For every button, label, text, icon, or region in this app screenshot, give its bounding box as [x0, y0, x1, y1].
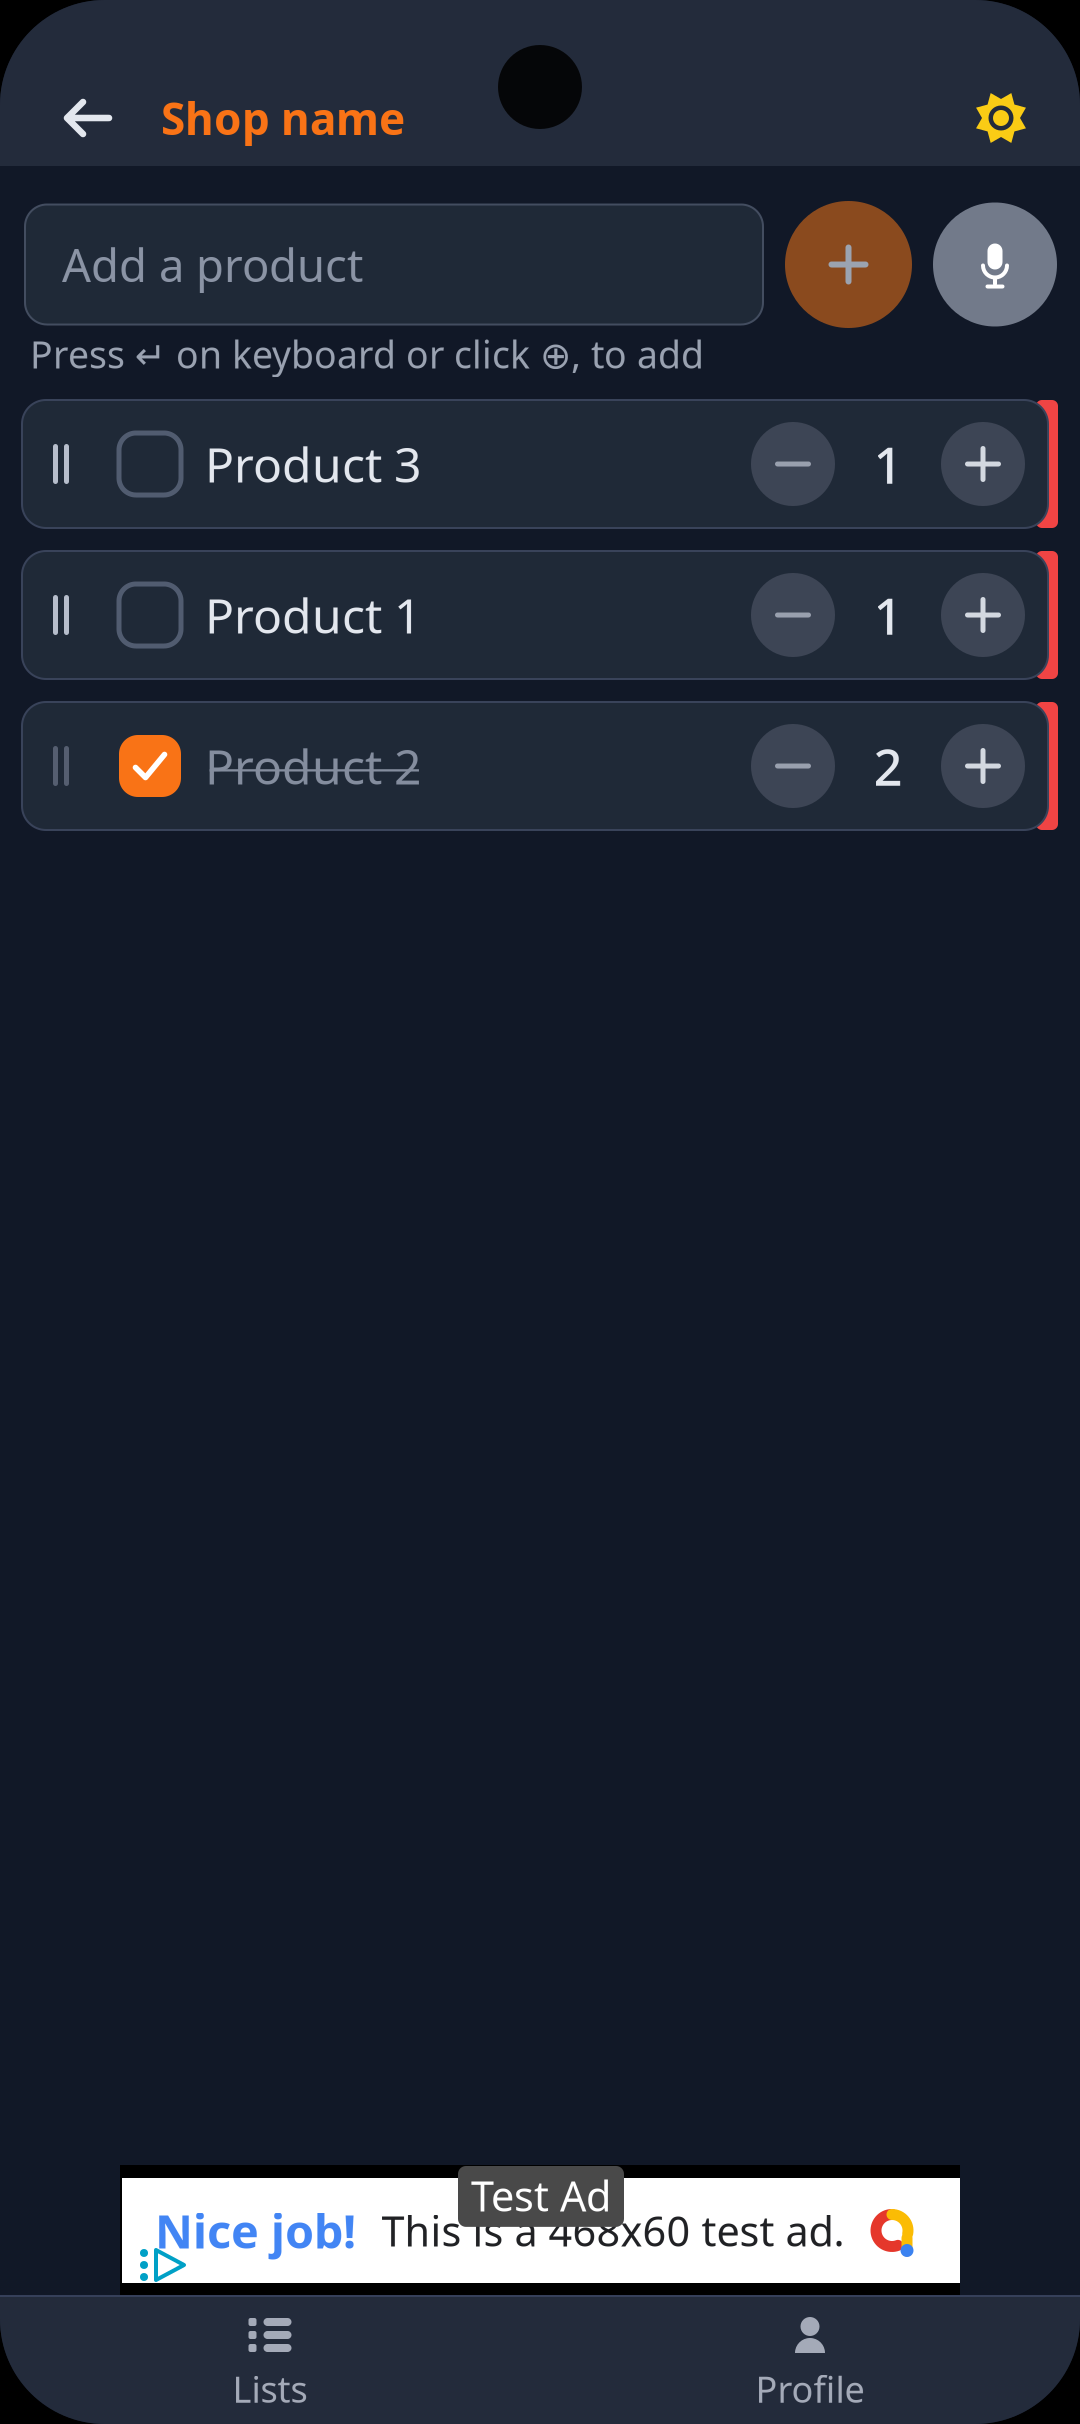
staticText: Product 2	[205, 734, 421, 798]
staticText: Product 1	[205, 583, 421, 647]
staticText: Add a product	[62, 234, 363, 295]
button[interactable]: Uncheck Product 2	[119, 702, 181, 830]
button[interactable]: Lists	[0, 2297, 540, 2424]
staticText: 1	[873, 430, 902, 498]
button[interactable]: Decrease quantity	[751, 400, 835, 528]
staticText: Test Ad	[471, 2168, 611, 2223]
button[interactable]: Check Product 3	[119, 400, 181, 528]
staticText: 2	[873, 732, 902, 800]
button[interactable]: Back	[0, 70, 161, 166]
staticText: Shop name	[161, 89, 405, 147]
button[interactable]: Increase quantity	[941, 551, 1025, 679]
button[interactable]: Increase quantity	[941, 702, 1025, 830]
button[interactable]: Voice input	[912, 202, 1080, 326]
staticText: Press ↵ on keyboard or click ⊕, to add	[30, 329, 704, 379]
button[interactable]: Product 3	[181, 400, 751, 528]
button[interactable]: Product 2	[181, 702, 751, 830]
button[interactable]: Increase quantity	[941, 400, 1025, 528]
button[interactable]: Add	[785, 201, 912, 328]
button[interactable]: Decrease quantity	[751, 702, 835, 830]
staticText: 1	[873, 581, 902, 649]
button[interactable]: Check Product 1	[119, 551, 181, 679]
button[interactable]: Reorder Product 2	[22, 702, 119, 830]
staticText: This is a 468x60 test ad.	[381, 2203, 844, 2258]
staticText: Profile	[755, 2365, 864, 2413]
button[interactable]: Decrease quantity	[751, 551, 835, 679]
staticText: Product 3	[205, 432, 421, 496]
button[interactable]: Product 1	[181, 551, 751, 679]
button[interactable]: Reorder Product 3	[22, 400, 119, 528]
button[interactable]: Add a product text field	[0, 204, 785, 324]
button[interactable]: Reorder Product 1	[22, 551, 119, 679]
button[interactable]: Profile	[540, 2297, 1080, 2424]
button[interactable]: Settings	[974, 70, 1080, 166]
staticText: Nice job!	[155, 2199, 356, 2261]
staticText: Lists	[232, 2365, 307, 2413]
